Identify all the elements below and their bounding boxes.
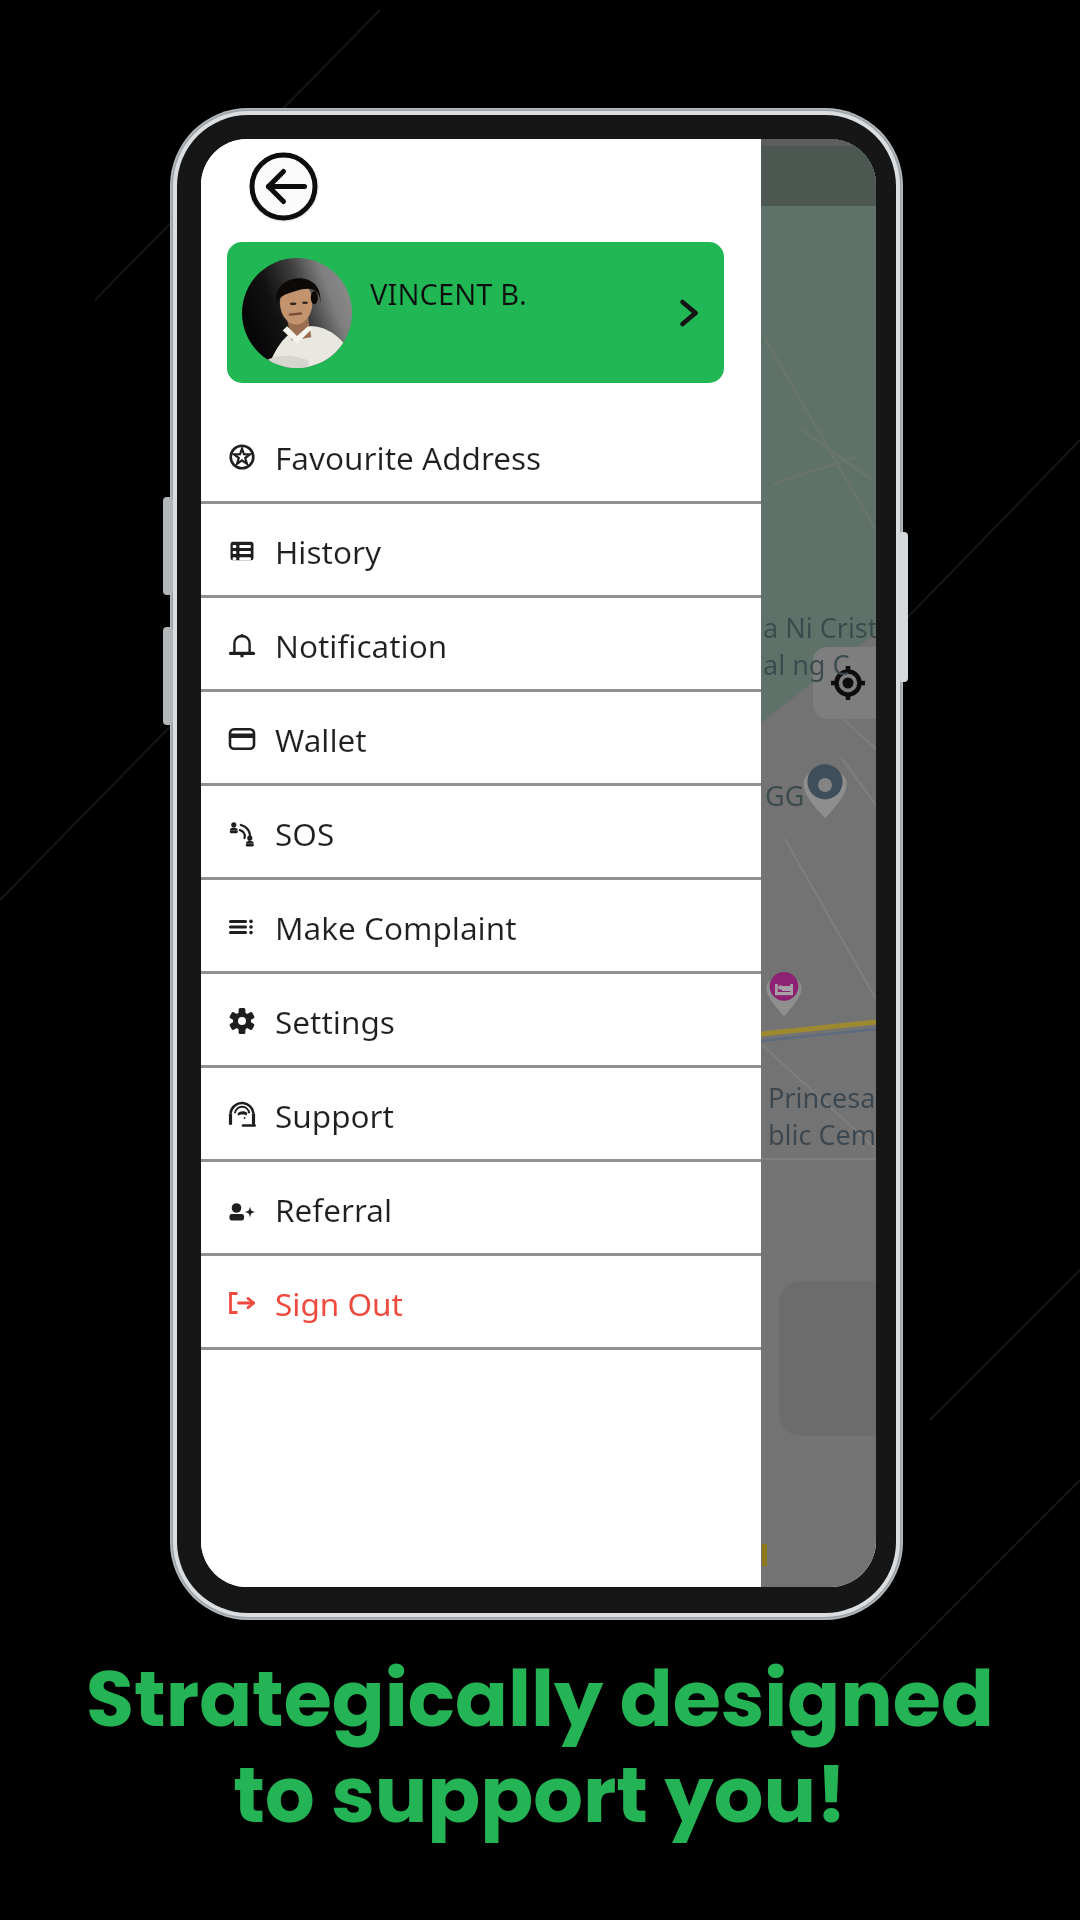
staticText: SOS xyxy=(275,812,335,855)
staticText: al ng C xyxy=(763,646,850,683)
staticText: Referral xyxy=(275,1188,393,1231)
button[interactable]: SOS xyxy=(201,786,761,880)
staticText: a Ni Cristo xyxy=(763,609,876,646)
button[interactable]: Make Complaint xyxy=(201,880,761,974)
staticText: Notification xyxy=(275,624,448,667)
button[interactable]: My location xyxy=(813,647,876,719)
button[interactable]: Wallet xyxy=(201,692,761,786)
staticText: Favourite Address xyxy=(275,436,542,479)
staticText: Sign Out xyxy=(275,1282,403,1325)
staticText: Support xyxy=(275,1094,394,1137)
button[interactable]: Back xyxy=(248,151,319,222)
staticText: Strategically designed xyxy=(86,1644,994,1753)
staticText: Wallet xyxy=(275,718,367,761)
button[interactable]: VINCENT B. xyxy=(227,242,724,383)
staticText: blic Cemet xyxy=(768,1116,876,1153)
staticText: GG xyxy=(765,777,805,814)
button[interactable]: Support xyxy=(201,1068,761,1162)
staticText: Princesa C xyxy=(768,1079,876,1116)
button[interactable]: Referral xyxy=(201,1162,761,1256)
staticText: Make Complaint xyxy=(275,906,517,949)
button[interactable]: History xyxy=(201,504,761,598)
staticText: VINCENT B. xyxy=(370,274,527,313)
staticText: to support you! xyxy=(233,1740,847,1849)
button[interactable]: Favourite Address xyxy=(201,410,761,504)
staticText: Settings xyxy=(275,1000,395,1043)
staticText: History xyxy=(275,530,382,573)
button[interactable]: Notification xyxy=(201,598,761,692)
button[interactable]: Sign Out xyxy=(201,1256,761,1350)
button[interactable]: Settings xyxy=(201,974,761,1068)
